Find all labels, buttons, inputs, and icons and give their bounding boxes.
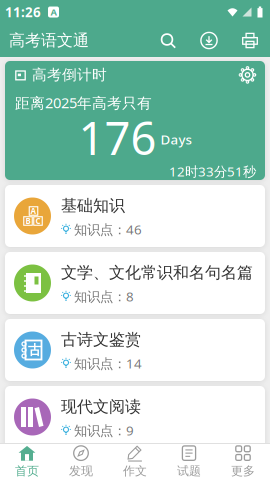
button[interactable]: 更多 — [216, 443, 270, 480]
staticText: 古 — [28, 342, 41, 358]
staticText: 首页 — [15, 464, 39, 478]
staticText: 知识点：9 — [74, 421, 134, 439]
staticText: A — [50, 6, 56, 18]
button[interactable] — [188, 24, 230, 57]
staticText: A — [30, 206, 36, 216]
staticText: 高考语文通 — [9, 31, 89, 50]
button[interactable]: A — [5, 185, 265, 247]
staticText: 现代文阅读 — [61, 397, 141, 416]
button[interactable]: 首页 — [0, 443, 54, 480]
staticText: 知识点：46 — [74, 220, 142, 238]
button[interactable]: 古 — [5, 319, 265, 381]
button[interactable]: 发现 — [54, 443, 108, 480]
staticText: 作文 — [123, 464, 147, 478]
staticText: 古诗文鉴赏 — [61, 330, 141, 349]
staticText: 知识点：8 — [74, 287, 134, 305]
staticText: B — [25, 216, 30, 226]
button[interactable]: 现代文阅读 — [5, 386, 265, 448]
button[interactable] — [230, 24, 270, 57]
staticText: 文学、文化常识和名句名篇 — [61, 263, 253, 282]
staticText: 11:26 — [5, 3, 41, 21]
staticText: 176 — [78, 107, 156, 167]
staticText: 距离2025年高考只有 — [15, 93, 152, 112]
staticText: 发现 — [69, 464, 93, 478]
staticText: Days — [160, 130, 191, 148]
button[interactable] — [239, 66, 256, 83]
staticText: 12时33分51秒 — [169, 162, 256, 180]
staticText: 知识点：14 — [74, 354, 142, 372]
staticText: 基础知识 — [61, 196, 125, 215]
button[interactable]: 作文 — [108, 443, 162, 480]
staticText: C — [35, 216, 40, 226]
staticText: 高考倒计时 — [32, 66, 107, 84]
button[interactable] — [148, 24, 188, 57]
button[interactable]: 试题 — [162, 443, 216, 480]
staticText: 更多 — [231, 464, 255, 478]
staticText: 试题 — [177, 464, 201, 478]
button[interactable]: 文学、文化常识和名句名篇 — [5, 252, 265, 314]
